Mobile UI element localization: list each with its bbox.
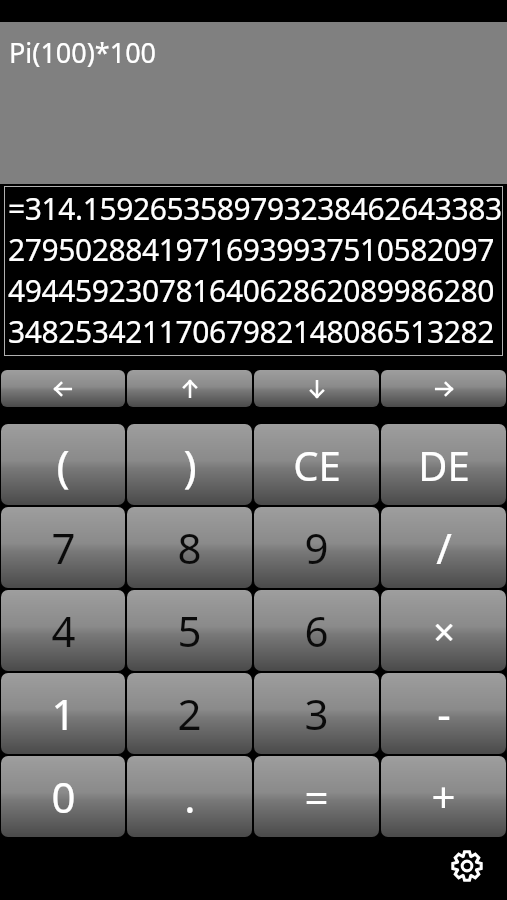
staticText: DE — [418, 438, 470, 492]
button[interactable]: ) — [127, 424, 252, 505]
staticText: 6 — [304, 602, 329, 659]
button[interactable]: Move left — [1, 370, 125, 407]
button[interactable]: Pi(100)*100 — [0, 22, 507, 184]
button[interactable]: Move right — [381, 370, 506, 407]
button[interactable]: 7 — [1, 507, 125, 588]
button[interactable]: 1 — [1, 673, 125, 754]
staticText: 3 — [304, 685, 329, 742]
staticText: ( — [56, 435, 70, 495]
button[interactable]: CE — [254, 424, 379, 505]
button[interactable]: 2 — [127, 673, 252, 754]
staticText: - — [437, 685, 451, 742]
button[interactable]: 4 — [1, 590, 125, 671]
button[interactable]: Move up — [127, 370, 252, 407]
button[interactable]: DE — [381, 424, 506, 505]
button[interactable]: 3 — [254, 673, 379, 754]
staticText: = — [304, 768, 329, 825]
staticText: × — [433, 605, 455, 657]
button[interactable]: Move down — [254, 370, 379, 407]
button[interactable]: ( — [1, 424, 125, 505]
staticText: ) — [183, 435, 197, 495]
staticText: 9 — [304, 519, 329, 576]
button[interactable]: Settings — [445, 844, 489, 888]
staticText: 0 — [51, 768, 76, 825]
button[interactable]: =314.15926535897932384626433832795028841… — [5, 187, 502, 355]
staticText: . — [184, 768, 196, 825]
staticText: =314.15926535897932384626433832795028841… — [8, 188, 502, 355]
staticText: 7 — [51, 519, 76, 576]
staticText: CE — [293, 438, 341, 492]
button[interactable]: - — [381, 673, 506, 754]
button[interactable]: 9 — [254, 507, 379, 588]
staticText: / — [436, 519, 452, 576]
button[interactable]: . — [127, 756, 252, 837]
button[interactable]: × — [381, 590, 506, 671]
button[interactable]: 8 — [127, 507, 252, 588]
staticText: 1 — [51, 685, 76, 742]
staticText: 2 — [177, 685, 202, 742]
staticText: 5 — [177, 602, 202, 659]
staticText: 4 — [51, 602, 76, 659]
staticText: Pi(100)*100 — [9, 34, 157, 71]
button[interactable]: 6 — [254, 590, 379, 671]
button[interactable]: 0 — [1, 756, 125, 837]
button[interactable]: + — [381, 756, 506, 837]
staticText: 8 — [177, 519, 202, 576]
button[interactable]: 5 — [127, 590, 252, 671]
staticText: + — [431, 768, 456, 825]
button[interactable]: = — [254, 756, 379, 837]
button[interactable]: / — [381, 507, 506, 588]
